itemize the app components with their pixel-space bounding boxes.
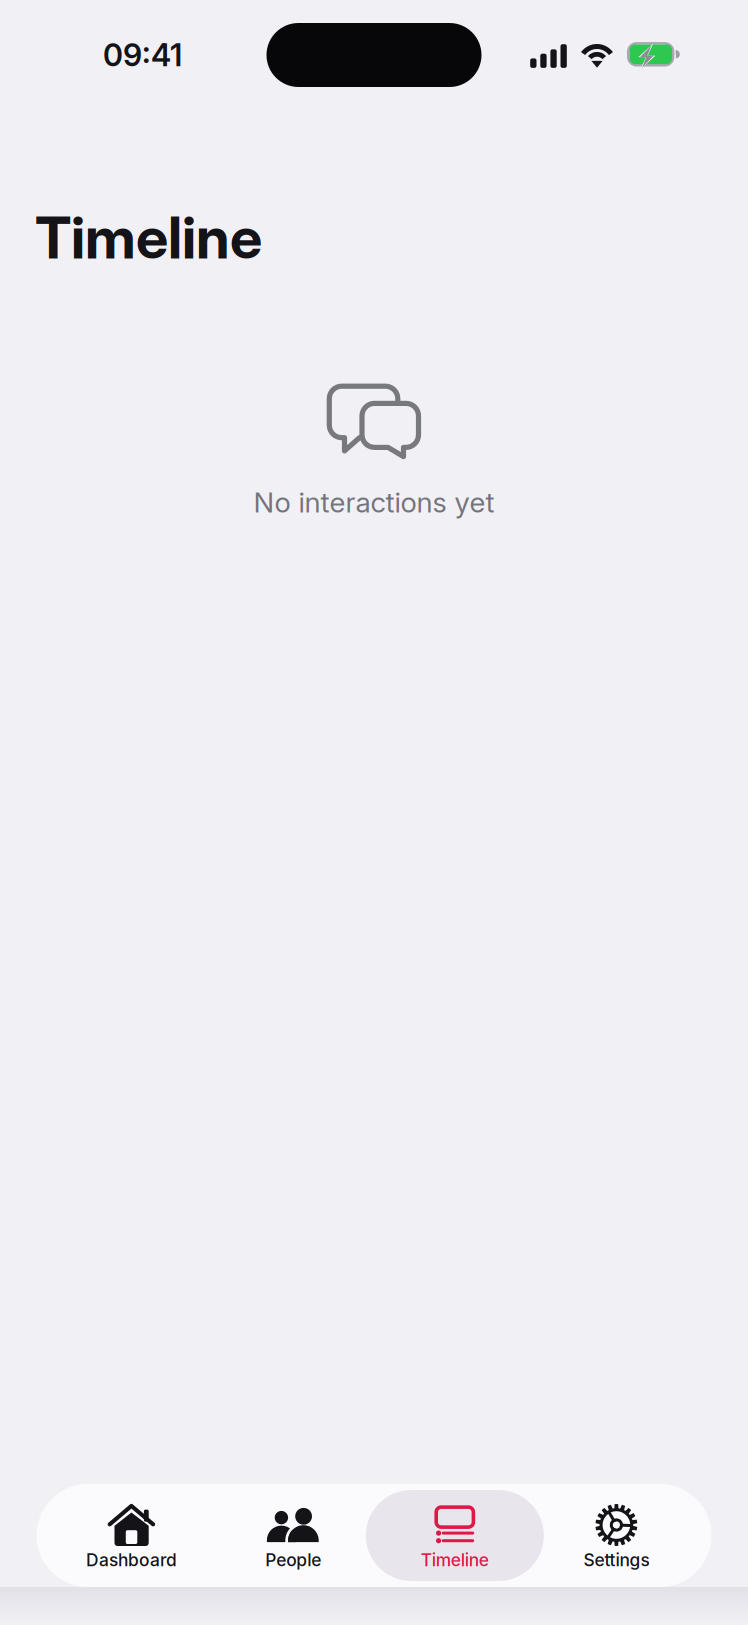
staticText: No interactions yet [253, 485, 494, 519]
button[interactable]: Settings [527, 1490, 705, 1581]
staticText: Timeline [421, 1549, 489, 1570]
staticText: Settings [583, 1549, 649, 1570]
button[interactable]: Dashboard [43, 1490, 221, 1581]
staticText: People [265, 1549, 321, 1570]
button[interactable]: People [204, 1490, 382, 1581]
staticText: 09:41 [103, 36, 182, 73]
staticText: Dashboard [86, 1549, 177, 1570]
button[interactable]: Timeline [366, 1490, 544, 1581]
staticText: Timeline [35, 203, 262, 272]
